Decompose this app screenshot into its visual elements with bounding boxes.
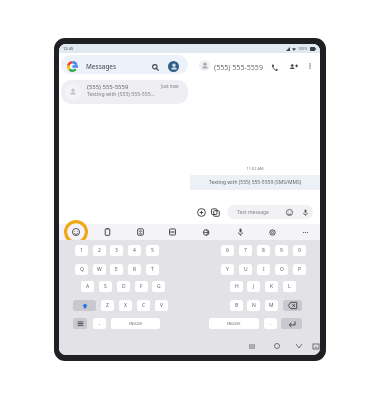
button[interactable]: Stickers [132, 224, 148, 240]
staticText: C [142, 302, 146, 309]
button[interactable]: A [81, 281, 94, 292]
button[interactable]: V [155, 300, 168, 311]
staticText: Texting with (555) 555-555… [87, 90, 155, 97]
button[interactable]: 8 [257, 245, 270, 256]
button[interactable]: H [230, 281, 243, 292]
button[interactable]: Back [292, 337, 306, 355]
button[interactable]: R [128, 264, 141, 275]
button[interactable]: 6 [221, 245, 234, 256]
staticText: J [253, 283, 255, 290]
staticText: 1 [80, 247, 83, 254]
button[interactable]: Translate [198, 224, 214, 240]
staticText: D [122, 283, 126, 290]
staticText: 3 [115, 247, 118, 254]
button[interactable]: GIF [164, 224, 180, 240]
button[interactable]: M [265, 300, 278, 311]
button[interactable]: Q [75, 264, 88, 275]
button[interactable]: W [93, 264, 106, 275]
button[interactable]: B [230, 300, 243, 311]
button[interactable]: Clipboard [99, 224, 115, 240]
button[interactable]: More options [305, 61, 315, 71]
button[interactable]: Texting with (555) 555-5559 (SMS/MMS) [190, 175, 320, 190]
button[interactable]: Account [168, 61, 179, 72]
staticText: 2 [98, 247, 101, 254]
button[interactable]: Add person [287, 61, 299, 73]
button[interactable]: C [137, 300, 150, 311]
button[interactable]: ENGLISH [209, 318, 259, 329]
button[interactable]: P [293, 264, 306, 275]
button[interactable]: , [93, 318, 106, 329]
button[interactable]: Voice input [232, 224, 248, 240]
button[interactable]: O [275, 264, 288, 275]
button[interactable]: Hide keyboard [309, 337, 320, 355]
staticText: Text message [237, 209, 269, 216]
button[interactable]: Y [221, 264, 234, 275]
button[interactable]: K [265, 281, 278, 292]
staticText: B [235, 302, 239, 309]
button[interactable]: Search [149, 61, 161, 73]
staticText: T [151, 266, 154, 273]
button[interactable]: U [239, 264, 252, 275]
button[interactable]: N [247, 300, 260, 311]
button[interactable]: 5 [146, 245, 159, 256]
button[interactable]: Shift [73, 300, 96, 311]
button[interactable]: (555) 555-5559 [61, 80, 188, 104]
staticText: Z [106, 302, 109, 309]
staticText: 100% [298, 46, 308, 51]
staticText: M [269, 302, 274, 309]
button[interactable]: S [99, 281, 112, 292]
staticText: Texting with (555) 555-5559 (SMS/MMS) [209, 179, 302, 186]
button[interactable]: J [247, 281, 260, 292]
staticText: R [133, 266, 137, 273]
button[interactable] [61, 55, 188, 74]
button[interactable]: 3 [110, 245, 123, 256]
button[interactable]: T [146, 264, 159, 275]
button[interactable]: E [110, 264, 123, 275]
staticText: Q [80, 266, 84, 273]
button[interactable]: D [117, 281, 130, 292]
staticText: G [157, 283, 161, 290]
button[interactable]: Add attachment [195, 206, 207, 218]
staticText: 11:02 AM [190, 166, 320, 171]
staticText: S [104, 283, 107, 290]
button[interactable]: Recents [245, 337, 259, 355]
staticText: A [86, 283, 90, 290]
staticText: O [280, 266, 284, 273]
button[interactable]: Emoji [68, 224, 84, 240]
button[interactable]: Enter [281, 318, 302, 329]
button[interactable]: Backspace [283, 300, 302, 311]
staticText: K [270, 283, 274, 290]
button[interactable]: Call [268, 61, 280, 73]
staticText: W [97, 266, 102, 273]
button[interactable]: 9 [275, 245, 288, 256]
button[interactable]: ENGLISH [111, 318, 160, 329]
staticText: N [252, 302, 256, 309]
staticText: L [288, 283, 291, 290]
button[interactable]: L [283, 281, 296, 292]
button[interactable]: 4 [128, 245, 141, 256]
button[interactable]: . [264, 318, 277, 329]
button[interactable]: 0 [293, 245, 306, 256]
button[interactable]: F [135, 281, 148, 292]
button[interactable]: Text message [227, 205, 313, 219]
staticText: 6 [226, 247, 229, 254]
button[interactable]: 1 [75, 245, 88, 256]
button[interactable]: G [152, 281, 165, 292]
button[interactable]: Symbols [73, 318, 87, 329]
button[interactable]: Home [270, 337, 284, 355]
staticText: 0 [298, 247, 301, 254]
button[interactable]: Z [101, 300, 114, 311]
button[interactable]: More [297, 224, 313, 240]
staticText: E [115, 266, 118, 273]
button[interactable]: I [257, 264, 270, 275]
staticText: , [99, 320, 101, 327]
staticText: I [263, 266, 265, 273]
staticText: F [140, 283, 143, 290]
staticText: . [270, 320, 272, 327]
staticText: (555) 555-5559 [87, 83, 129, 91]
button[interactable]: 7 [239, 245, 252, 256]
button[interactable]: X [119, 300, 132, 311]
button[interactable]: 2 [93, 245, 106, 256]
button[interactable]: Settings [264, 224, 280, 240]
button[interactable]: Gallery [209, 206, 221, 218]
